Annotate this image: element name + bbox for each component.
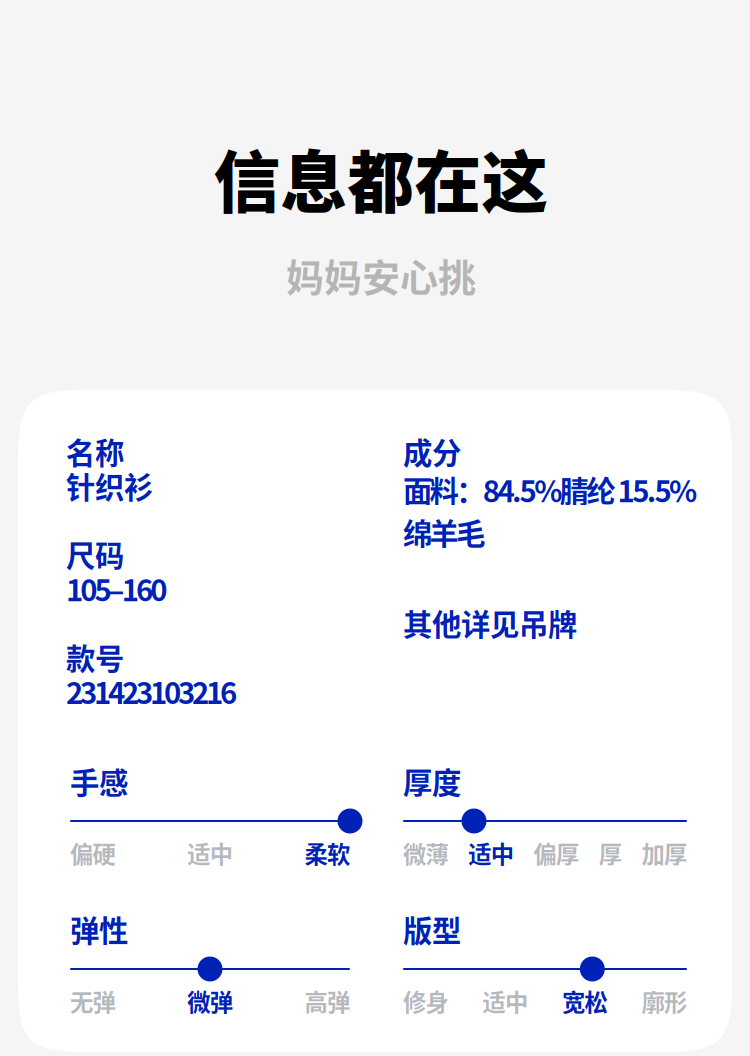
staticText: 微薄 — [403, 836, 448, 870]
staticText: 针织衫 — [66, 464, 153, 507]
staticText: 柔软 — [305, 836, 350, 870]
staticText: 信息都在这 — [213, 130, 548, 226]
staticText: 名称 — [66, 430, 124, 472]
staticText: 105–160 — [66, 567, 167, 610]
staticText — [66, 498, 73, 541]
staticText: 弹性 — [70, 908, 128, 950]
staticText: 231423103216 — [66, 670, 237, 712]
staticText: 尺码 — [66, 533, 124, 575]
staticText: 无弹 — [70, 984, 115, 1018]
staticText: 适中 — [187, 836, 233, 870]
staticText — [403, 533, 410, 575]
staticText: 适中 — [468, 836, 514, 870]
staticText: 偏厚 — [533, 836, 579, 870]
button[interactable]: 厚度 — [403, 754, 687, 870]
staticText: 手感 — [70, 760, 128, 802]
staticText: 成分 — [403, 430, 461, 472]
staticText: 廓形 — [642, 984, 687, 1018]
button[interactable]: 弹性 — [70, 902, 350, 1018]
staticText: 修身 — [403, 984, 448, 1018]
staticText: 厚度 — [403, 760, 461, 802]
staticText: 加厚 — [642, 836, 687, 870]
staticText: 其他详见吊牌 — [403, 601, 577, 644]
button[interactable]: 版型 — [403, 902, 687, 1018]
staticText: 妈妈安心挑 — [286, 247, 476, 302]
staticText — [66, 601, 73, 644]
staticText: 微弹 — [187, 984, 233, 1018]
staticText: 版型 — [403, 908, 461, 950]
staticText: 款号 — [66, 636, 124, 678]
staticText: 面料：84.5%腈纶 15.5%绵羊毛 — [403, 468, 697, 553]
staticText: 厚 — [599, 836, 622, 870]
staticText: 高弹 — [305, 984, 350, 1018]
staticText: 偏硬 — [70, 836, 115, 870]
staticText: 宽松 — [562, 984, 607, 1018]
staticText: 适中 — [482, 984, 528, 1018]
button[interactable]: 手感 — [70, 754, 350, 870]
